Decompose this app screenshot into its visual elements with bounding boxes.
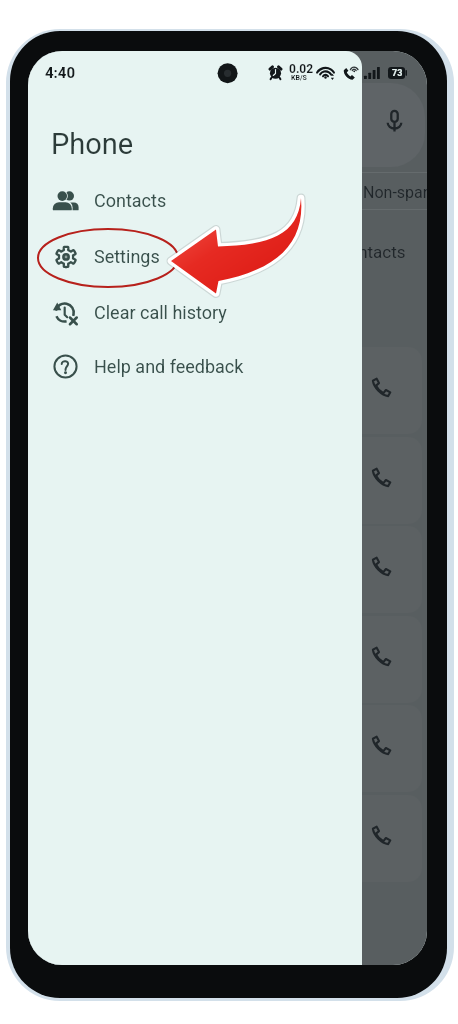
staticText: Phone [51,127,134,161]
staticText: KB/S [291,74,307,82]
button[interactable]: Help and feedback [28,339,362,393]
staticText: Settings [94,246,160,267]
button[interactable]: Contacts [28,173,362,227]
staticText: Help and feedback [94,356,244,377]
button[interactable]: Voice search [38,83,425,167]
button[interactable] [34,526,422,613]
staticText: Contacts [94,190,167,211]
button[interactable] [34,437,422,524]
staticText: 4:40 [45,64,76,82]
button[interactable] [34,616,422,703]
staticText: 73 [392,68,403,79]
staticText: Non-spam [363,183,427,202]
staticText: 0.02 [289,62,314,76]
staticText: Clear call history [94,302,227,323]
button[interactable]: Clear call history [28,285,362,339]
button[interactable] [34,795,422,882]
button[interactable]: Voice search [386,110,403,132]
button[interactable]: Settings [28,229,362,283]
button[interactable] [34,347,422,434]
button[interactable] [34,705,422,792]
staticText: Recent contacts [283,242,406,262]
